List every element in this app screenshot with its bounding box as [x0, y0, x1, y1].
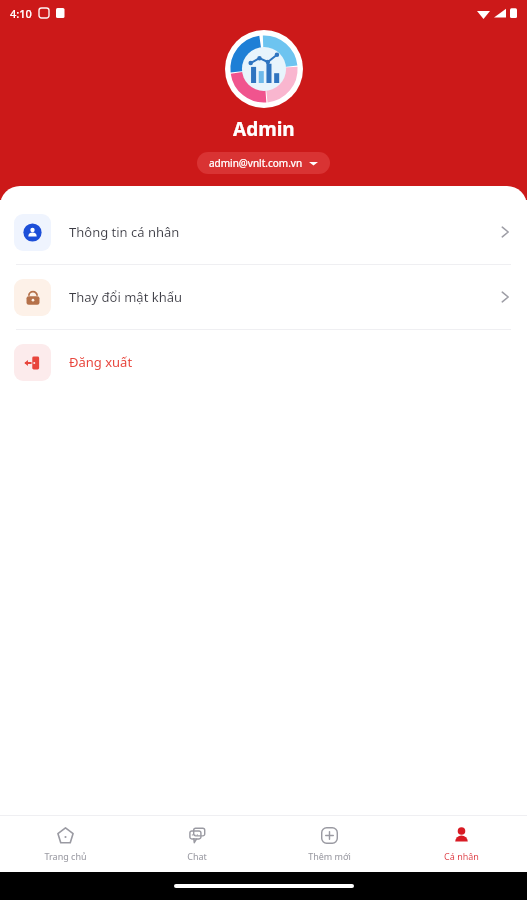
staticText: Cá nhân	[444, 850, 479, 862]
button[interactable]: Cá nhân	[395, 816, 527, 872]
other: Chat	[188, 826, 207, 845]
button[interactable]: Trang chủ	[0, 816, 131, 872]
other: Cá nhân	[452, 826, 471, 845]
button[interactable]: admin@vnlt.com.vn	[197, 152, 330, 174]
other: Thêm mới	[320, 826, 339, 845]
staticText: 4:10	[10, 6, 32, 21]
button[interactable]: Đăng xuất	[0, 330, 527, 394]
staticText: Thay đổi mật khẩu	[69, 288, 183, 306]
staticText: Thông tin cá nhân	[69, 223, 180, 241]
staticText: Admin	[233, 116, 295, 142]
button[interactable]: Chat	[131, 816, 263, 872]
other: Trang chủ	[56, 826, 75, 845]
staticText: Đăng xuất	[69, 353, 133, 371]
staticText: Chat	[187, 850, 207, 862]
button[interactable]: Thêm mới	[263, 816, 395, 872]
staticText: Thêm mới	[308, 850, 351, 862]
staticText: Trang chủ	[44, 850, 87, 862]
staticText: admin@vnlt.com.vn	[209, 156, 303, 170]
button[interactable]: Thay đổi mật khẩu	[0, 265, 527, 329]
button[interactable]: Thông tin cá nhân	[0, 200, 527, 264]
